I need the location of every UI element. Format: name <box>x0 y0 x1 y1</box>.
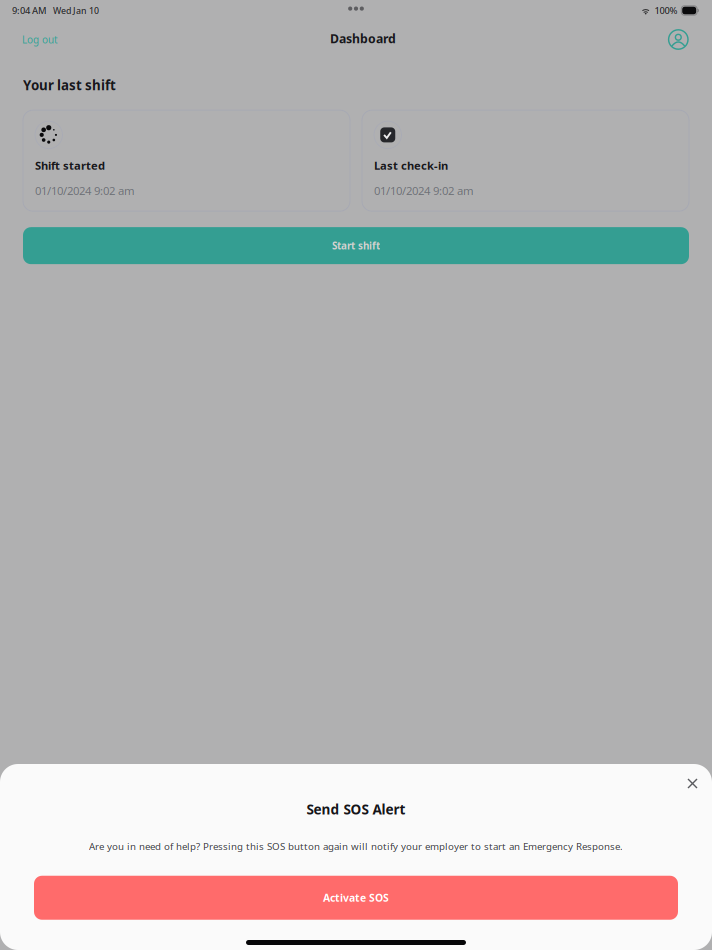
staticText: Log out <box>22 33 58 46</box>
staticText: Dashboard <box>330 30 396 47</box>
staticText: Are you in need of help? Pressing this S… <box>89 839 623 853</box>
staticText: Send SOS Alert <box>306 800 405 818</box>
staticText: Last check-in <box>374 158 448 173</box>
button[interactable]: Close <box>678 771 707 800</box>
staticText: 01/10/2024 9:02 am <box>374 183 474 198</box>
button[interactable]: Activate SOS <box>34 876 678 920</box>
staticText: Your last shift <box>23 76 116 94</box>
staticText: 9:04 AM <box>12 4 47 17</box>
staticText: Start shift <box>332 239 380 252</box>
staticText: Activate SOS <box>323 891 389 905</box>
staticText: 01/10/2024 9:02 am <box>35 183 135 198</box>
staticText: Wed Jan 10 <box>53 4 99 16</box>
button[interactable]: Log out <box>15 27 65 52</box>
button[interactable]: Start shift <box>23 227 689 264</box>
staticText: Shift started <box>35 158 105 173</box>
button[interactable]: Account <box>661 24 696 55</box>
staticText: 100% <box>654 4 677 17</box>
